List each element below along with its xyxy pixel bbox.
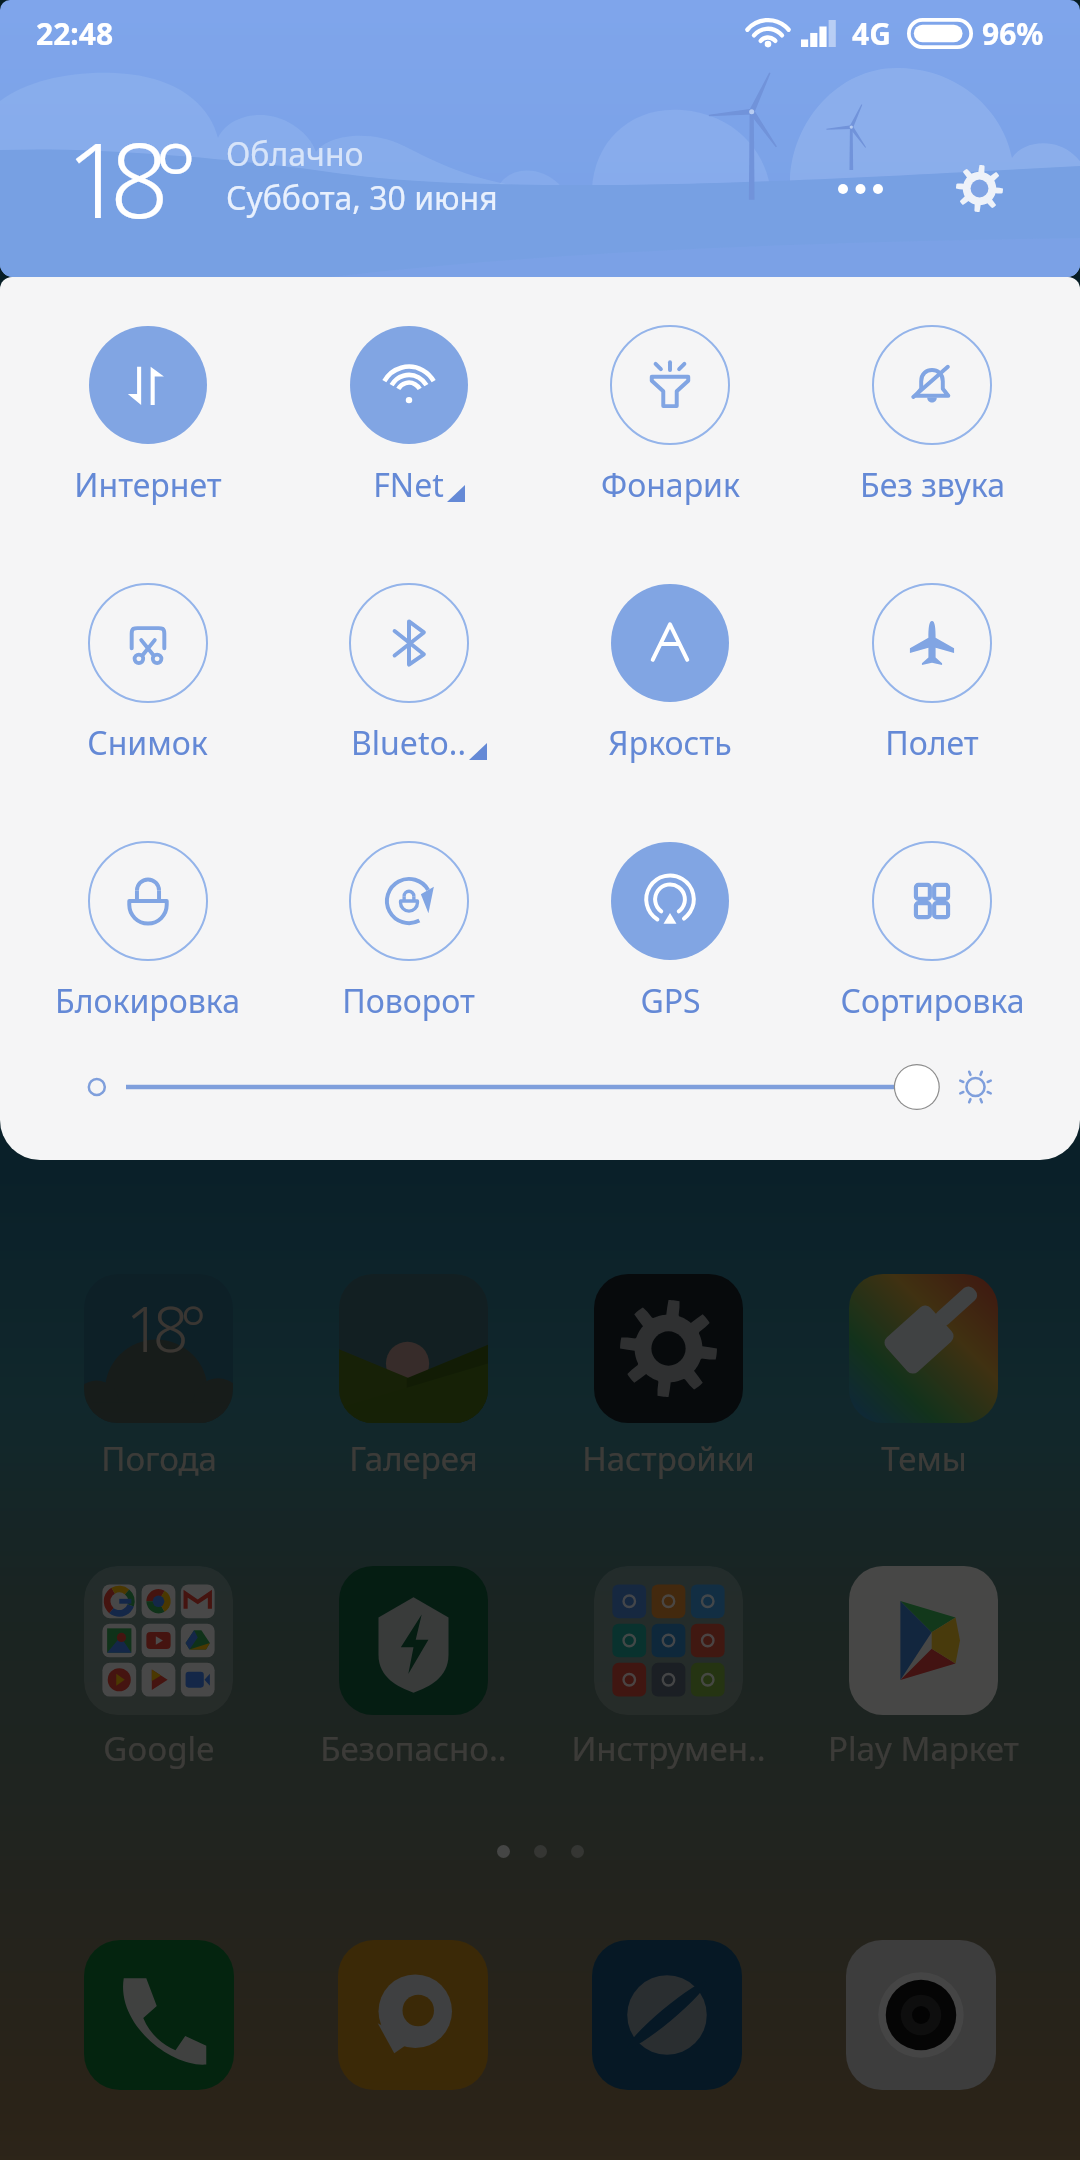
button[interactable]: Яркость bbox=[0, 1027, 1080, 1147]
button[interactable] bbox=[339, 1566, 488, 1715]
button[interactable]: phone bbox=[84, 1940, 234, 2090]
staticText: Темы bbox=[881, 1436, 967, 1481]
button[interactable]: camera bbox=[846, 1940, 996, 2090]
staticText: Яркость bbox=[608, 721, 732, 765]
staticText: Фонарик bbox=[601, 463, 740, 507]
staticText: Инструмен.. bbox=[571, 1726, 766, 1771]
button[interactable]: browser bbox=[592, 1940, 742, 2090]
staticText: 22:48 bbox=[36, 13, 114, 54]
staticText: GPS bbox=[640, 979, 701, 1023]
staticText: 18° bbox=[66, 108, 183, 248]
button[interactable]: Фонарик bbox=[539, 324, 801, 507]
staticText: Блокировка bbox=[55, 979, 240, 1023]
button[interactable]: FNet bbox=[278, 324, 539, 507]
staticText: Настройки bbox=[582, 1436, 755, 1481]
staticText: Сортировка bbox=[840, 979, 1025, 1023]
button[interactable]: Ещё bbox=[818, 146, 903, 231]
staticText: Поворот bbox=[342, 979, 475, 1023]
button[interactable] bbox=[84, 1566, 233, 1715]
staticText: Google bbox=[103, 1726, 215, 1771]
staticText: Суббота, 30 июня bbox=[226, 176, 498, 220]
button[interactable]: Поворот bbox=[278, 840, 539, 1023]
staticText: Облачно bbox=[226, 132, 364, 176]
button[interactable]: GPS bbox=[539, 840, 801, 1023]
button[interactable]: Блокировка bbox=[17, 840, 278, 1023]
staticText: Снимок bbox=[87, 721, 208, 765]
staticText: Безопасно.. bbox=[320, 1726, 507, 1771]
staticText: Интернет bbox=[74, 463, 222, 507]
button[interactable] bbox=[849, 1274, 998, 1423]
button[interactable] bbox=[594, 1566, 743, 1715]
button[interactable] bbox=[849, 1566, 998, 1715]
button[interactable]: Яркость bbox=[539, 582, 801, 765]
staticText: Без звука bbox=[860, 463, 1005, 507]
staticText: 4G bbox=[852, 13, 891, 54]
staticText: 18° bbox=[126, 1286, 199, 1370]
button[interactable] bbox=[339, 1274, 488, 1423]
staticText: Галерея bbox=[349, 1436, 478, 1481]
staticText: 96% bbox=[982, 13, 1044, 54]
button[interactable]: Без звука bbox=[801, 324, 1063, 507]
staticText: FNet bbox=[373, 463, 444, 507]
staticText: Полет bbox=[885, 721, 979, 765]
button[interactable]: Полет bbox=[801, 582, 1063, 765]
staticText: Play Маркет bbox=[828, 1726, 1019, 1771]
button[interactable]: Blueto.. bbox=[278, 582, 539, 765]
button[interactable]: Снимок bbox=[17, 582, 278, 765]
button[interactable]: sms bbox=[338, 1940, 488, 2090]
button[interactable]: Сортировка bbox=[801, 840, 1063, 1023]
button[interactable] bbox=[594, 1274, 743, 1423]
staticText: Погода bbox=[101, 1436, 217, 1481]
button[interactable]: 18° bbox=[84, 1274, 233, 1423]
button[interactable]: Настройки bbox=[939, 148, 1019, 228]
staticText: Blueto.. bbox=[351, 721, 466, 765]
button[interactable]: Интернет bbox=[17, 324, 278, 507]
